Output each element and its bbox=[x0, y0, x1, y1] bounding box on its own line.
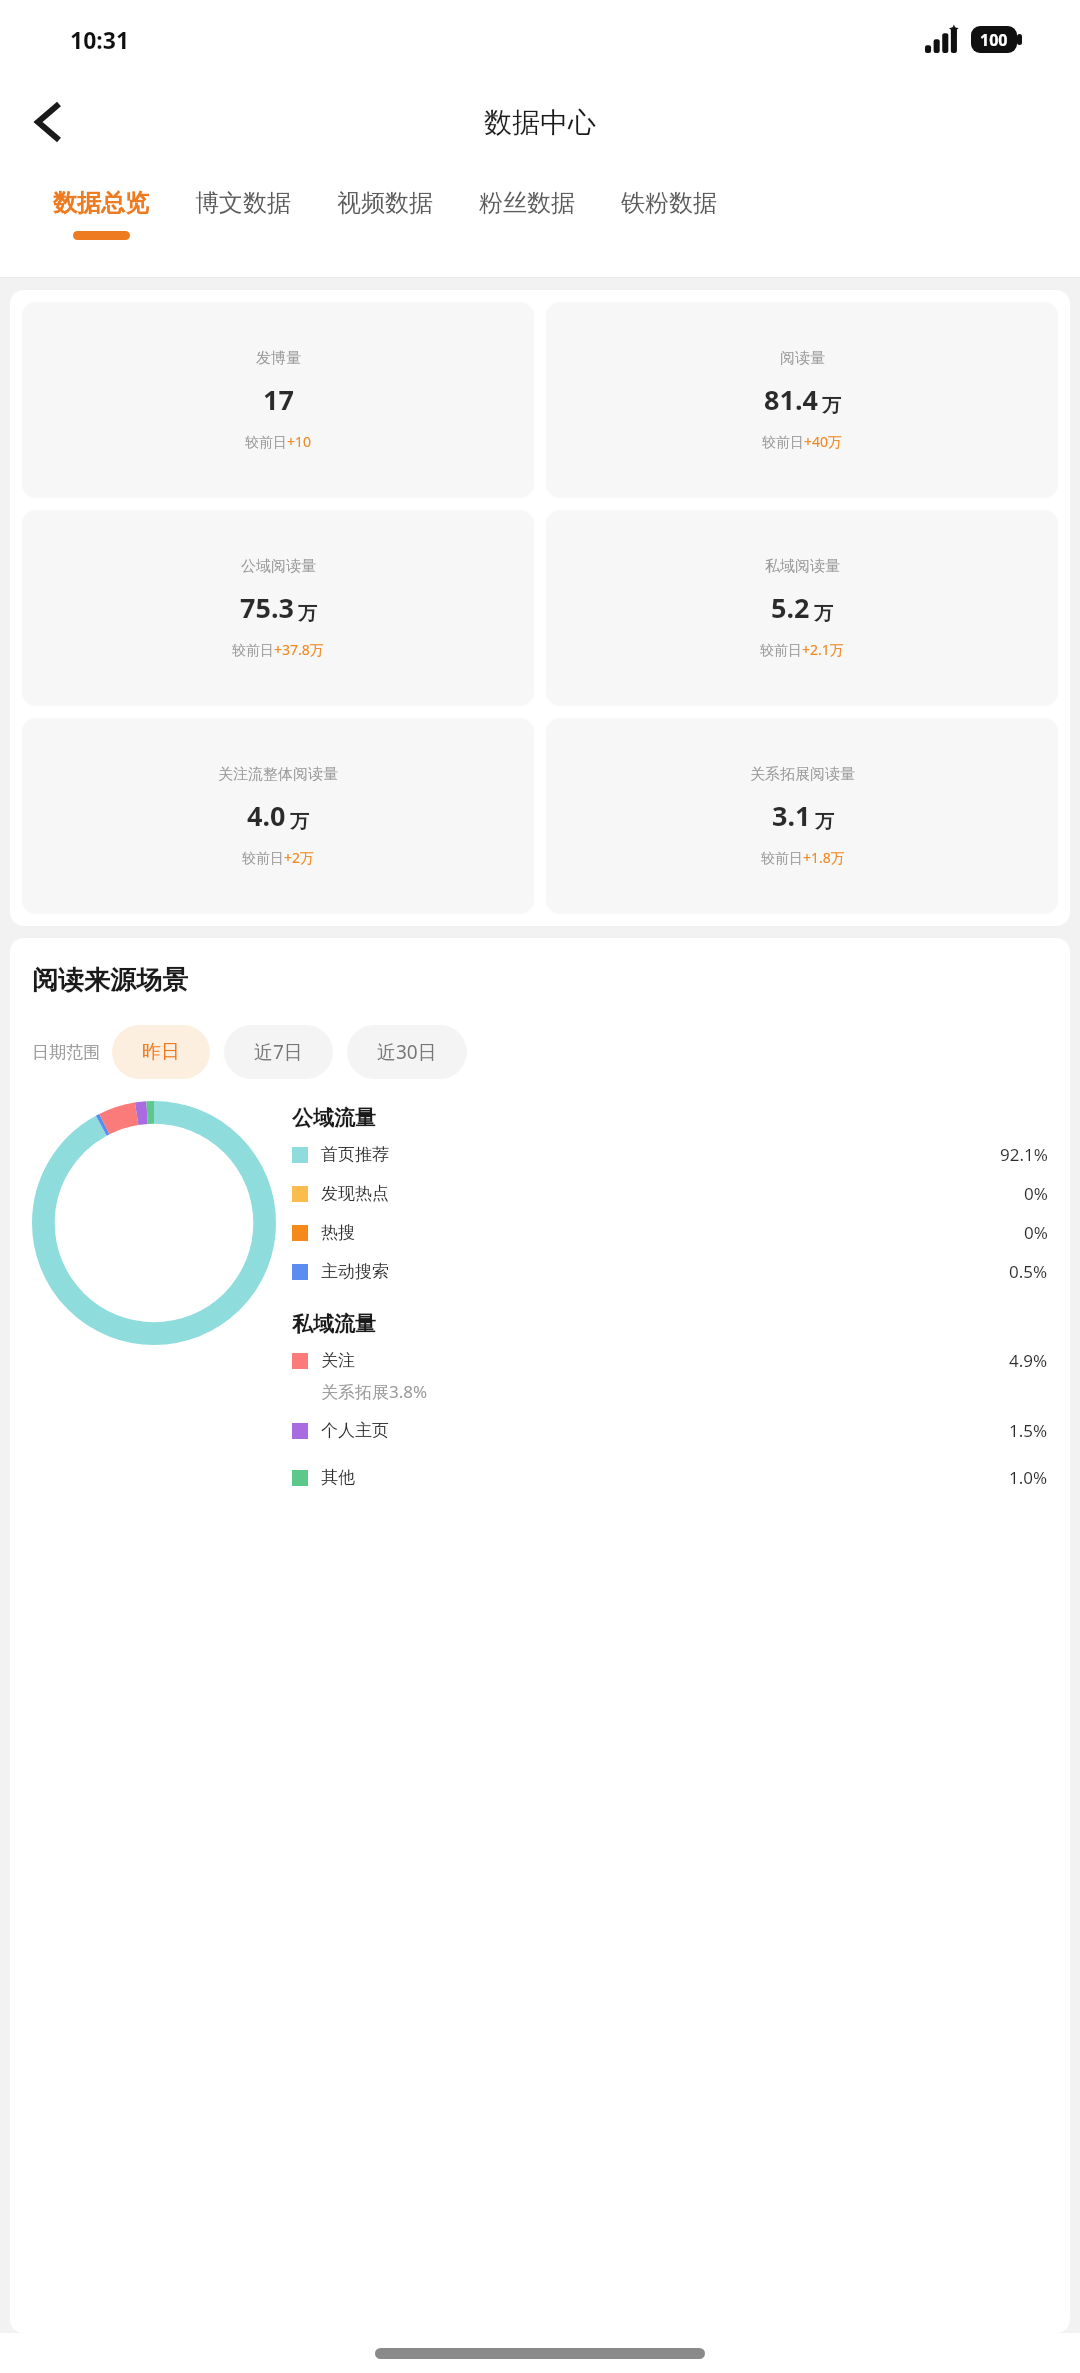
button[interactable]: 视频数据 bbox=[337, 166, 433, 231]
staticText: 1.5% bbox=[1009, 1419, 1048, 1442]
staticText: 4.9% bbox=[1009, 1349, 1048, 1372]
staticText: 万 bbox=[815, 810, 834, 834]
staticText: 公域阅读量 bbox=[241, 557, 316, 576]
staticText: 较前日+37.8万 bbox=[232, 640, 324, 659]
button[interactable]: 公域阅读量 bbox=[22, 510, 534, 706]
staticText: 0% bbox=[1024, 1182, 1048, 1205]
staticText: 关注流整体阅读量 bbox=[218, 765, 338, 784]
staticText: 万 bbox=[290, 810, 309, 834]
staticText: 75.3 bbox=[240, 589, 294, 626]
staticText: 4.0 bbox=[247, 797, 286, 834]
button[interactable]: 昨日 bbox=[112, 1025, 210, 1079]
staticText: 较前日+10 bbox=[245, 432, 312, 451]
staticText: 100 bbox=[980, 29, 1008, 51]
staticText: 数据总览 bbox=[53, 188, 149, 218]
staticText: 其他 bbox=[321, 1467, 355, 1488]
staticText: 数据中心 bbox=[484, 105, 596, 140]
staticText: 发现热点 bbox=[321, 1183, 389, 1204]
staticText: 近30日 bbox=[377, 1039, 437, 1065]
button[interactable]: 近30日 bbox=[347, 1025, 467, 1079]
staticText: 阅读来源场景 bbox=[32, 964, 188, 997]
button[interactable]: 粉丝数据 bbox=[479, 166, 575, 231]
staticText: 关系拓展3.8% bbox=[321, 1380, 428, 1403]
staticText: 热搜 bbox=[321, 1222, 355, 1243]
button[interactable]: 近7日 bbox=[224, 1025, 333, 1079]
staticText: 首页推荐 bbox=[321, 1144, 389, 1165]
staticText: 较前日+40万 bbox=[762, 432, 843, 451]
button[interactable]: 关系拓展阅读量 bbox=[546, 718, 1058, 914]
button[interactable]: 铁粉数据 bbox=[621, 166, 717, 231]
button[interactable]: 私域阅读量 bbox=[546, 510, 1058, 706]
button[interactable]: 阅读量 bbox=[546, 302, 1058, 498]
staticText: 关注 bbox=[321, 1350, 355, 1371]
button[interactable]: 发博量 bbox=[22, 302, 534, 498]
button[interactable]: 主动搜索 bbox=[292, 1252, 1048, 1291]
staticText: 81.4 bbox=[764, 381, 818, 418]
button[interactable]: 关注 bbox=[292, 1341, 1048, 1380]
staticText: 阅读量 bbox=[780, 349, 825, 368]
staticText: 万 bbox=[814, 602, 833, 626]
button[interactable]: 首页推荐 bbox=[292, 1135, 1048, 1174]
staticText: 粉丝数据 bbox=[479, 188, 575, 218]
staticText: 较前日+2.1万 bbox=[760, 640, 844, 659]
staticText: 万 bbox=[298, 602, 317, 626]
staticText: 近7日 bbox=[254, 1039, 303, 1065]
staticText: 0% bbox=[1024, 1221, 1048, 1244]
staticText: 较前日+2万 bbox=[242, 848, 315, 867]
staticText: 公域流量 bbox=[292, 1105, 376, 1131]
button[interactable]: 发现热点 bbox=[292, 1174, 1048, 1213]
button[interactable]: 数据总览 bbox=[53, 166, 149, 240]
staticText: 0.5% bbox=[1009, 1260, 1048, 1283]
staticText: 私域阅读量 bbox=[765, 557, 840, 576]
staticText: 较前日+1.8万 bbox=[761, 848, 845, 867]
staticText: 博文数据 bbox=[195, 188, 291, 218]
staticText: 1.0% bbox=[1009, 1466, 1048, 1489]
button[interactable]: 个人主页 bbox=[292, 1411, 1048, 1450]
staticText: 个人主页 bbox=[321, 1420, 389, 1441]
button[interactable]: 其他 bbox=[292, 1458, 1048, 1497]
button[interactable]: Back bbox=[18, 92, 78, 152]
button[interactable]: 热搜 bbox=[292, 1213, 1048, 1252]
staticText: 17 bbox=[263, 381, 294, 418]
staticText: 发博量 bbox=[256, 349, 301, 368]
staticText: 私域流量 bbox=[292, 1311, 376, 1337]
staticText: 5.2 bbox=[771, 589, 810, 626]
staticText: 主动搜索 bbox=[321, 1261, 389, 1282]
staticText: 铁粉数据 bbox=[621, 188, 717, 218]
button[interactable]: 关注流整体阅读量 bbox=[22, 718, 534, 914]
staticText: 92.1% bbox=[1000, 1143, 1048, 1166]
staticText: 万 bbox=[822, 394, 841, 418]
staticText: 日期范围 bbox=[32, 1042, 100, 1063]
staticText: 关系拓展阅读量 bbox=[750, 765, 855, 784]
staticText: 昨日 bbox=[142, 1040, 180, 1064]
staticText: 3.1 bbox=[772, 797, 811, 834]
staticText: 10:31 bbox=[70, 24, 130, 55]
button[interactable]: 博文数据 bbox=[195, 166, 291, 231]
staticText: 视频数据 bbox=[337, 188, 433, 218]
